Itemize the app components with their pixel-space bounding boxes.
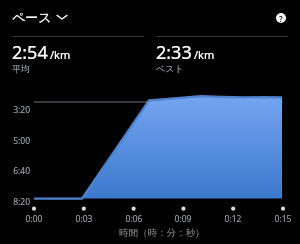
staticText: 0:12 (218, 213, 248, 225)
staticText: 8:20 (0, 196, 30, 208)
staticText: 時間（時：分：秒） (112, 227, 212, 239)
button[interactable]: Help (268, 5, 294, 31)
staticText: 2:33 (156, 40, 192, 65)
staticText: ペース (12, 9, 52, 25)
staticText: 0:09 (168, 213, 198, 225)
staticText: /km (194, 47, 215, 62)
staticText: 0:00 (19, 213, 49, 225)
staticText: 6:40 (0, 165, 30, 177)
staticText: 3:20 (0, 104, 30, 116)
staticText: ? (279, 13, 283, 23)
staticText: 2:54 (12, 40, 48, 65)
staticText: 平均 (12, 63, 30, 74)
staticText: 0:03 (69, 213, 99, 225)
staticText: 0:06 (119, 213, 149, 225)
staticText: 0:15 (268, 213, 298, 225)
button[interactable]: ペース (12, 9, 67, 25)
staticText: /km (50, 47, 71, 62)
staticText: 5:00 (0, 135, 30, 147)
staticText: ベスト (156, 63, 184, 74)
